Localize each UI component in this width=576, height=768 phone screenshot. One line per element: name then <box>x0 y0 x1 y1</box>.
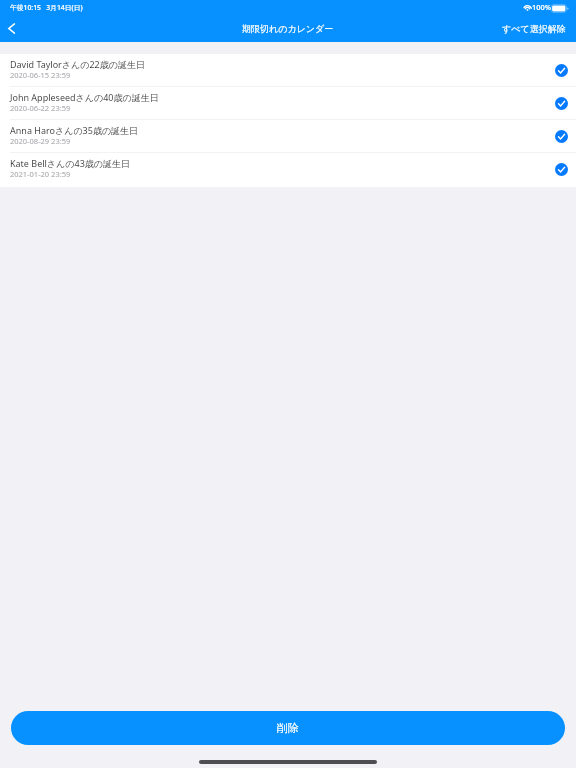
button[interactable]: 選択済み <box>551 126 571 146</box>
button[interactable]: Anna Haroさんの35歳の誕生日 <box>0 120 576 153</box>
staticText: Anna Haroさんの35歳の誕生日 <box>10 124 139 136</box>
button[interactable]: 削除 <box>11 711 565 745</box>
staticText: 2020-06-15 23:59 <box>10 70 71 80</box>
button[interactable]: Kate Bellさんの43歳の誕生日 <box>0 153 576 186</box>
button[interactable]: すべて選択解除 <box>498 20 570 37</box>
staticText: 2021-01-20 23:59 <box>10 169 71 179</box>
staticText: 100% <box>532 2 551 12</box>
button[interactable]: Back <box>0 15 24 41</box>
staticText: 削除 <box>277 721 299 735</box>
button[interactable]: John Appleseedさんの40歳の誕生日 <box>0 87 576 120</box>
staticText: David Taylorさんの22歳の誕生日 <box>10 58 145 70</box>
button[interactable]: 選択済み <box>551 93 571 113</box>
button[interactable]: David Taylorさんの22歳の誕生日 <box>0 54 576 87</box>
staticText: 期限切れのカレンダー <box>242 23 334 34</box>
staticText: John Appleseedさんの40歳の誕生日 <box>10 91 159 103</box>
staticText: すべて選択解除 <box>502 23 566 34</box>
staticText: 午後10:15 3月14日(日) <box>10 3 83 12</box>
staticText: Kate Bellさんの43歳の誕生日 <box>10 157 130 169</box>
staticText: 2020-06-22 23:59 <box>10 103 71 113</box>
staticText: 2020-08-29 23:59 <box>10 136 71 146</box>
button[interactable]: 選択済み <box>551 159 571 179</box>
button[interactable]: 選択済み <box>551 60 571 80</box>
